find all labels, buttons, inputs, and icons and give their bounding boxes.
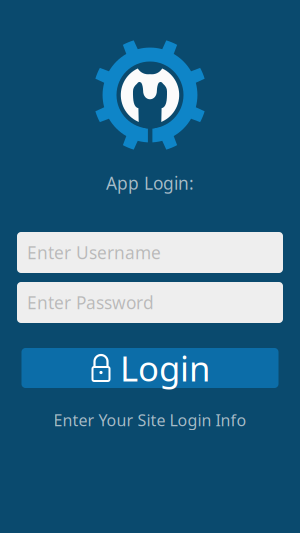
staticText: Login [120, 345, 210, 391]
staticText: Enter Your Site Login Info [53, 409, 246, 431]
button[interactable]: Login [21, 348, 278, 388]
staticText: App Login: [106, 171, 194, 194]
staticText: Enter Username [27, 241, 161, 264]
staticText: Enter Password [27, 291, 154, 314]
